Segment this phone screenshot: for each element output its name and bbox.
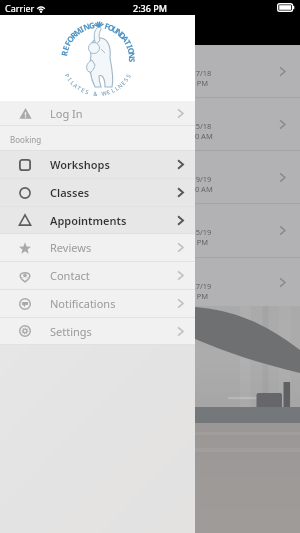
staticText: Appointments [50, 213, 127, 228]
staticText: Reviews [50, 240, 92, 255]
staticText: 01/19/19 [180, 174, 212, 184]
button[interactable]: Settings [0, 318, 195, 344]
button[interactable]: Notifications [0, 290, 195, 317]
staticText: 10:00 AM [180, 131, 213, 141]
staticText: Settings [50, 324, 92, 339]
staticText: Contact [50, 268, 90, 283]
staticText: 2:36 PM [133, 2, 167, 14]
staticText: Carrier [5, 2, 35, 14]
button[interactable]: Contact [0, 262, 195, 289]
staticText: 10/27/18 [180, 68, 212, 78]
button[interactable]: Log In [0, 101, 195, 125]
staticText: Classes [50, 185, 90, 200]
button[interactable]: Workshops [0, 151, 195, 178]
staticText: 11/25/18 [180, 121, 212, 131]
staticText: 6:00 PM [180, 237, 209, 247]
staticText: Log In [50, 106, 83, 121]
button[interactable]: Classes [0, 179, 195, 206]
button[interactable]: Appointments [0, 207, 195, 233]
staticText: Booking [10, 134, 42, 145]
staticText: Workshops [50, 157, 110, 172]
staticText: 6:00 PM [180, 78, 209, 88]
button[interactable]: Reviews [0, 234, 195, 261]
staticText: 04/27/19 [180, 281, 212, 291]
staticText: 03/15/19 [180, 227, 212, 237]
staticText: 6:00 PM [180, 291, 209, 301]
staticText: 10:00 AM [180, 184, 213, 194]
staticText: Notifications [50, 296, 116, 311]
